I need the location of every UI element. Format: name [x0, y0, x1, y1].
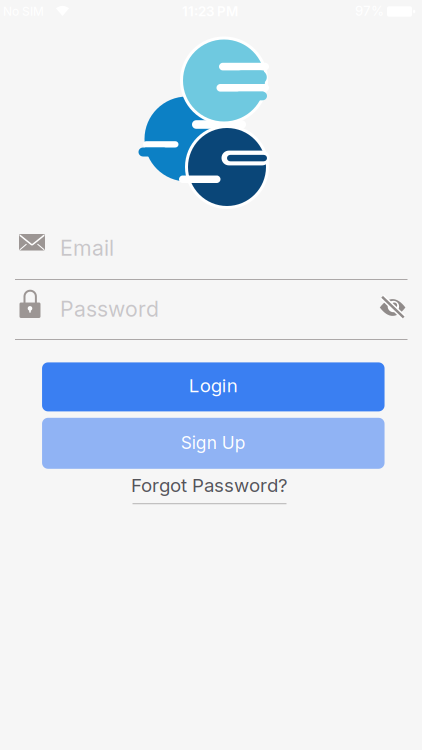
staticText: 11:23 PM — [182, 4, 238, 19]
button[interactable]: Email — [15, 230, 407, 280]
staticText: Login — [189, 374, 238, 396]
staticText: Email — [60, 235, 114, 261]
button[interactable]: Login — [42, 362, 385, 411]
button[interactable]: Show password — [370, 285, 414, 329]
staticText: Sign Up — [181, 432, 246, 453]
button[interactable]: Password — [15, 290, 407, 340]
button[interactable]: Sign Up — [42, 418, 385, 469]
button[interactable]: Forgot Password? — [131, 474, 288, 504]
staticText: Forgot Password? — [131, 474, 288, 496]
staticText: Password — [60, 296, 159, 322]
